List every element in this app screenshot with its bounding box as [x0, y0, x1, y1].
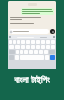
button[interactable]: [20, 50, 23, 54]
button[interactable]: [26, 45, 30, 49]
button[interactable]: [39, 50, 43, 54]
button[interactable]: [21, 45, 25, 49]
button[interactable]: [9, 40, 12, 44]
button[interactable]: [41, 45, 45, 49]
button[interactable]: [17, 40, 20, 44]
button[interactable]: [21, 40, 25, 44]
button[interactable]: [9, 45, 14, 49]
button[interactable]: [24, 50, 28, 54]
button[interactable]: [45, 55, 49, 60]
button[interactable]: [41, 40, 45, 44]
button[interactable]: [16, 50, 19, 54]
button[interactable]: Settings: [53, 36, 55, 38]
button[interactable]: [13, 40, 16, 44]
button[interactable]: [29, 50, 33, 54]
button[interactable]: [9, 29, 49, 34]
button[interactable]: [51, 45, 55, 49]
button[interactable]: [26, 40, 30, 44]
button[interactable]: [34, 50, 38, 54]
button[interactable]: Camera: [50, 29, 55, 34]
button[interactable]: [21, 8, 54, 15]
button[interactable]: [51, 40, 55, 44]
button[interactable]: [31, 40, 35, 44]
button[interactable]: [50, 55, 55, 60]
button[interactable]: [36, 45, 40, 49]
button[interactable]: [46, 40, 50, 44]
button[interactable]: [15, 55, 19, 60]
button[interactable]: [36, 40, 40, 44]
button[interactable]: [15, 45, 20, 49]
button[interactable]: [46, 45, 50, 49]
button[interactable]: [44, 50, 48, 54]
button[interactable]: [31, 45, 35, 49]
staticText: বাংলা টাইপিং: [0, 73, 64, 85]
